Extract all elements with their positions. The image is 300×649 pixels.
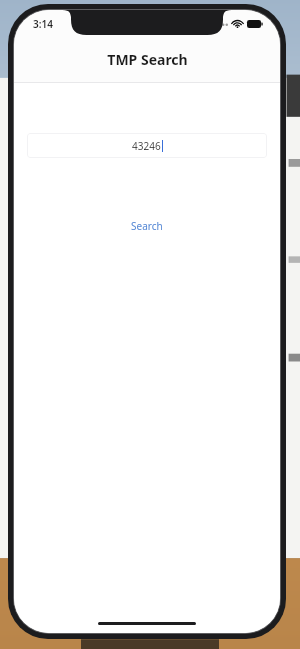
staticText: 43246 <box>132 139 161 153</box>
button[interactable]: Search <box>121 215 173 237</box>
staticText: Search <box>131 219 163 233</box>
staticText: TMP Search <box>107 50 188 69</box>
button[interactable]: 43246 <box>27 133 267 158</box>
other: Home indicator <box>98 622 196 625</box>
staticText: 3:14 <box>33 17 53 31</box>
